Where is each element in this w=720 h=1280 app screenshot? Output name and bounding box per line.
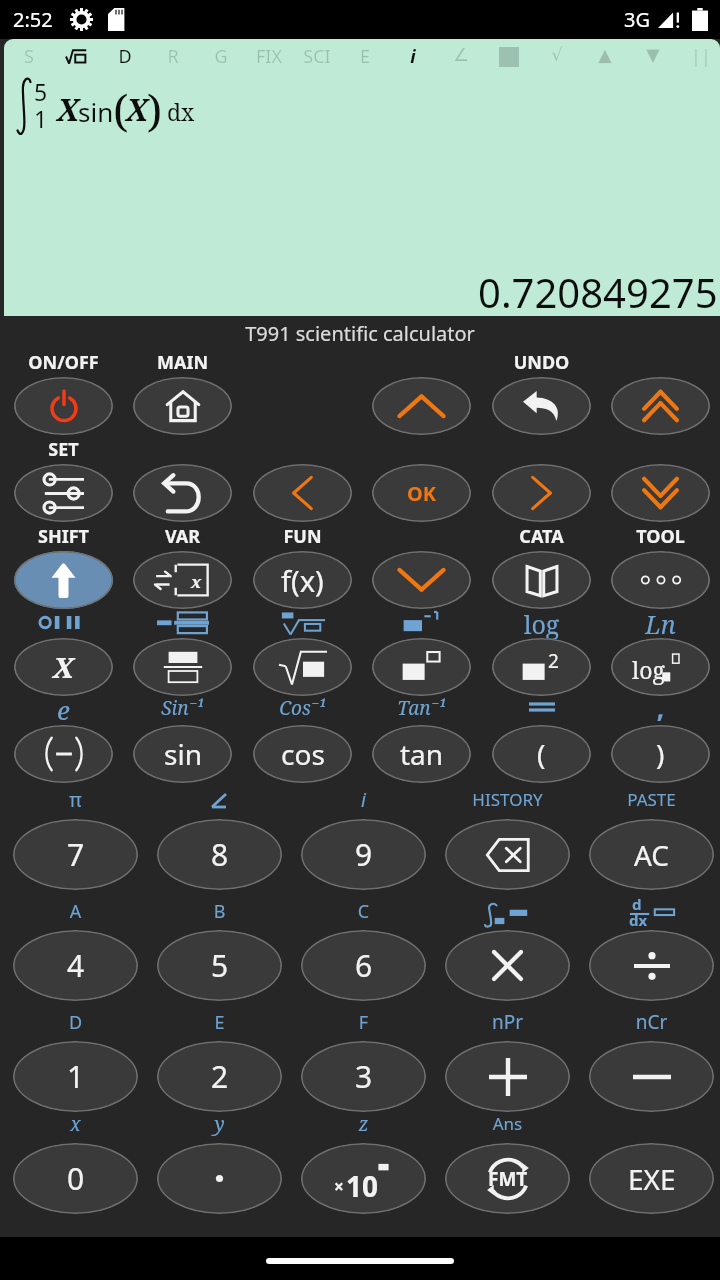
button[interactable]: Square [492, 638, 591, 696]
staticText: C [301, 899, 426, 924]
staticText: 9 [355, 834, 373, 875]
staticText: X [57, 89, 79, 130]
button[interactable]: Times ten to the power [301, 1143, 426, 1214]
button[interactable]: Execute [589, 1143, 714, 1214]
button[interactable]: Up [372, 377, 471, 435]
staticText: 1 [34, 103, 48, 134]
staticText: 2 [211, 1056, 229, 1097]
staticText: e [14, 692, 113, 727]
button[interactable]: 2 [157, 1041, 282, 1112]
button[interactable]: 1 [13, 1041, 138, 1112]
staticText: Cos⁻¹ [253, 695, 352, 721]
button[interactable]: Square root [253, 638, 352, 696]
staticText: ) [147, 80, 163, 140]
staticText: d [632, 894, 642, 914]
button[interactable]: 0 [13, 1143, 138, 1214]
staticText: i [301, 787, 426, 813]
staticText: 3G [624, 6, 650, 33]
button[interactable]: Shift [14, 551, 113, 609]
staticText: ∠ [439, 44, 483, 65]
staticText: ▼ [631, 44, 675, 65]
staticText: 8 [211, 834, 229, 875]
staticText: z [301, 1111, 426, 1137]
button[interactable]: Divide [589, 930, 714, 1001]
staticText: ▲ [583, 44, 627, 65]
staticText: log [492, 607, 591, 641]
button[interactable]: Close parenthesis [611, 725, 710, 783]
button[interactable]: Right [492, 464, 591, 522]
button[interactable]: 8 [157, 819, 282, 890]
staticText: 0.720849275 [478, 265, 718, 316]
staticText: MAIN [133, 350, 232, 375]
staticText: cos [281, 735, 325, 773]
staticText: sin [78, 94, 114, 129]
button[interactable]: Minus [589, 1041, 714, 1112]
button[interactable]: X variable [14, 638, 113, 696]
button[interactable]: Format [445, 1143, 570, 1214]
button[interactable]: 3 [301, 1041, 426, 1112]
staticText: S [7, 44, 51, 69]
button[interactable]: sin [133, 725, 232, 783]
button[interactable]: Variables [133, 551, 232, 609]
button[interactable]: Plus [445, 1041, 570, 1112]
button[interactable]: Back [133, 464, 232, 522]
staticText: CATA [492, 524, 591, 549]
staticText: ( [113, 80, 129, 140]
staticText: i [391, 44, 435, 69]
staticText: SCI [295, 44, 339, 69]
button[interactable]: Logarithm [611, 638, 710, 696]
button[interactable]: All clear [589, 819, 714, 890]
staticText: E [343, 44, 387, 69]
button[interactable]: Fraction [133, 638, 232, 696]
button[interactable]: Page up [611, 377, 710, 435]
button[interactable]: 4 [13, 930, 138, 1001]
staticText: 5 [34, 76, 48, 107]
staticText: Sin⁻¹ [133, 695, 232, 721]
button[interactable]: 5 [157, 930, 282, 1001]
staticText: 5 [211, 945, 229, 986]
staticText: nCr [589, 1009, 714, 1035]
button[interactable]: Power [372, 638, 471, 696]
staticText: X [126, 89, 148, 130]
button[interactable]: OK [372, 464, 471, 522]
button[interactable]: Tools [611, 551, 710, 609]
button[interactable]: Main menu [133, 377, 232, 435]
staticText: F [301, 1010, 426, 1035]
staticText: 10 [346, 1167, 379, 1203]
button[interactable]: cos [253, 725, 352, 783]
staticText: Ln [611, 607, 710, 641]
button[interactable]: Catalog [492, 551, 591, 609]
button[interactable]: Multiply [445, 930, 570, 1001]
staticText: 6 [355, 945, 373, 986]
staticText: y [157, 1111, 282, 1137]
staticText: D [13, 1010, 138, 1035]
staticText: ON/OFF [14, 350, 113, 375]
button[interactable]: Decimal point [157, 1143, 282, 1214]
staticText: T991 scientific calculator [0, 320, 720, 347]
button[interactable]: Delete [445, 819, 570, 890]
button[interactable]: 9 [301, 819, 426, 890]
button[interactable]: Functions [253, 551, 352, 609]
staticText: π [13, 787, 138, 813]
staticText: EXE [628, 1160, 676, 1198]
button[interactable]: 6 [301, 930, 426, 1001]
button[interactable]: Left [253, 464, 352, 522]
button[interactable]: Page down [611, 464, 710, 522]
staticText: TOOL [611, 524, 710, 549]
staticText: Ans [445, 1112, 570, 1135]
button[interactable]: 7 [13, 819, 138, 890]
button[interactable]: Negate [14, 725, 113, 783]
button[interactable]: Open parenthesis [492, 725, 591, 783]
staticText: 4 [67, 945, 85, 986]
staticText: || [679, 44, 720, 69]
button[interactable]: tan [372, 725, 471, 783]
staticText: FIX [247, 44, 291, 69]
staticText: X [53, 648, 74, 686]
button[interactable]: Settings [14, 464, 113, 522]
staticText: PASTE [589, 788, 714, 811]
staticText: 7 [67, 834, 85, 875]
staticText: FUN [253, 524, 352, 549]
button[interactable]: On Off [14, 377, 113, 435]
button[interactable]: Down [372, 551, 471, 609]
button[interactable]: Undo [492, 377, 591, 435]
